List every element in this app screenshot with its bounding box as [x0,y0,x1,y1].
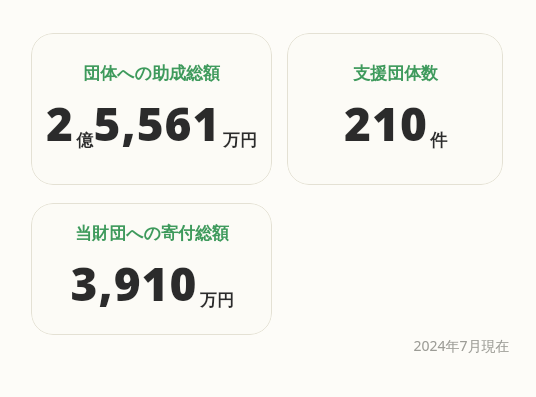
staticText: 210 [344,92,428,155]
staticText: 当財団への寄付総額 [75,223,229,244]
staticText: 万円 [223,130,257,151]
staticText: 2024年7月現在 [413,336,510,355]
staticText: 支援団体数 [353,63,438,84]
staticText: 団体への助成総額 [83,63,220,84]
staticText: 件 [430,130,447,151]
staticText: 2 [46,92,74,155]
button[interactable]: Data as of July 2024 [413,336,510,355]
staticText: 5,561 [93,92,221,155]
button[interactable]: 当財団への寄付総額 [31,203,272,335]
staticText: 3,910 [70,252,198,315]
staticText: 億 [76,130,93,151]
staticText: 万円 [200,290,234,311]
button[interactable]: 団体への助成総額 [31,33,272,185]
button[interactable]: 支援団体数 [287,33,503,185]
